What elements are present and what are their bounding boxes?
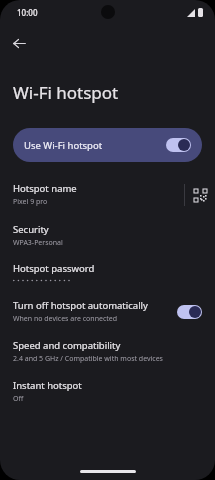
staticText: 2.4 and 5 GHz / Compatible with most dev… bbox=[13, 354, 163, 364]
staticText: Wi-Fi hotspot bbox=[13, 81, 119, 104]
staticText: 10:00 bbox=[17, 7, 38, 18]
button[interactable]: Turn off hotspot automatically bbox=[0, 297, 215, 326]
staticText: Pixel 9 pro bbox=[13, 197, 48, 207]
button[interactable]: Hotspot name bbox=[0, 176, 215, 213]
staticText: Hotspot password bbox=[13, 262, 95, 275]
staticText: Off bbox=[13, 394, 24, 404]
button[interactable]: Speed and compatibility bbox=[0, 337, 215, 366]
button[interactable]: Hotspot password bbox=[0, 259, 215, 286]
staticText: When no devices are connected bbox=[13, 314, 118, 324]
button[interactable]: Security bbox=[0, 221, 215, 250]
staticText: Security bbox=[13, 223, 49, 236]
button[interactable]: Share hotspot QR code bbox=[185, 180, 215, 210]
staticText: WPA3-Personal bbox=[13, 238, 63, 248]
button[interactable]: Use Wi-Fi hotspot bbox=[13, 128, 202, 162]
staticText: Hotspot name bbox=[13, 182, 77, 195]
button[interactable]: Back bbox=[6, 30, 32, 56]
staticText: Use Wi-Fi hotspot bbox=[24, 139, 103, 152]
button[interactable]: Instant hotspot bbox=[0, 377, 215, 406]
staticText: Instant hotspot bbox=[13, 379, 82, 392]
staticText: Speed and compatibility bbox=[13, 339, 121, 352]
staticText: Turn off hotspot automatically bbox=[13, 299, 148, 312]
